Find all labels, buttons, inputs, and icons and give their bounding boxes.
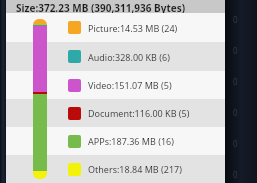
- staticText: APPs:187.36 MB (16): [88, 135, 174, 147]
- button[interactable]: Video:151.07 MB (5): [6, 71, 225, 99]
- staticText: 0: [233, 14, 238, 25]
- staticText: 0: [233, 107, 238, 118]
- button[interactable]: Picture:14.53 MB (24): [6, 13, 225, 42]
- staticText: 0: [233, 169, 238, 180]
- staticText: 0: [233, 45, 238, 56]
- staticText: Video:151.07 MB (5): [88, 79, 172, 91]
- staticText: Audio:328.00 KB (6): [88, 51, 170, 63]
- button[interactable]: Storage usage bar: [33, 19, 47, 179]
- button[interactable]: Side panel: [225, 0, 257, 183]
- staticText: 0: [233, 138, 238, 149]
- staticText: Document:116.00 KB (5): [88, 107, 190, 119]
- button[interactable]: Document:116.00 KB (5): [6, 99, 225, 127]
- staticText: Others:18.84 MB (217): [88, 163, 182, 175]
- button[interactable]: Audio:328.00 KB (6): [6, 42, 225, 71]
- staticText: Size:372.23 MB (390,311,936 Bytes): [16, 1, 186, 14]
- button[interactable]: Others:18.84 MB (217): [6, 155, 225, 183]
- staticText: Picture:14.53 MB (24): [88, 22, 178, 34]
- staticText: 0: [233, 76, 238, 87]
- button[interactable]: APPs:187.36 MB (16): [6, 127, 225, 155]
